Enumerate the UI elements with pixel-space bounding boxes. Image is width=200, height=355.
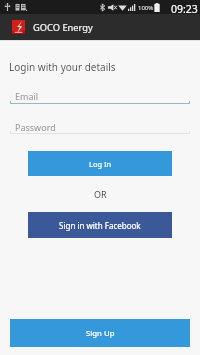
button[interactable]: Log In (28, 151, 172, 176)
staticText: Sign in with Facebook (59, 220, 141, 231)
staticText: Log In (89, 159, 112, 169)
staticText: Email (15, 90, 39, 102)
staticText: Sign Up (86, 328, 115, 339)
staticText: 09:23 (171, 2, 198, 16)
staticText: Password (15, 121, 56, 133)
staticText: GOCO Energy (33, 21, 93, 34)
staticText: OR (94, 188, 107, 200)
other: GOCO Energy logo (12, 20, 25, 34)
button[interactable]: Password (10, 121, 190, 137)
staticText: Login with your details (9, 60, 116, 74)
staticText: 100% (138, 4, 154, 12)
button[interactable]: Email (10, 90, 190, 106)
button[interactable]: Sign Up (10, 319, 190, 347)
button[interactable]: Sign in with Facebook (28, 212, 172, 238)
